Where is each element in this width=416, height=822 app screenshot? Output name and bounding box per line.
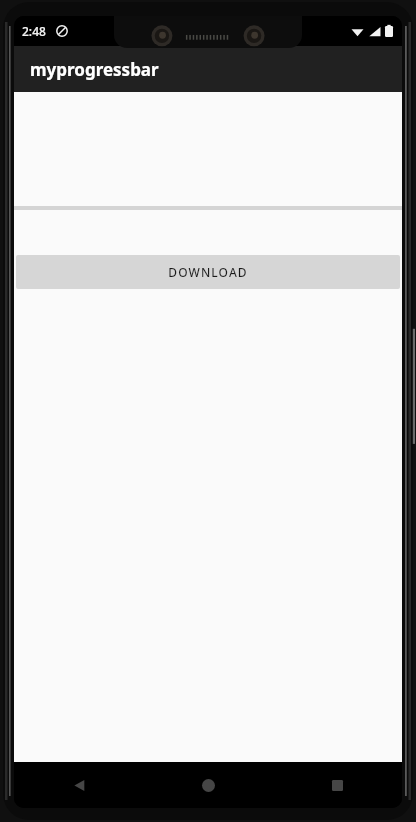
staticText: DOWNLOAD — [168, 264, 248, 280]
staticText: myprogressbar — [30, 58, 159, 81]
button[interactable]: Recent apps — [273, 762, 402, 808]
button[interactable]: DOWNLOAD — [16, 255, 400, 289]
button[interactable]: Home — [144, 762, 273, 808]
staticText: 2:48 — [22, 23, 46, 39]
button[interactable]: Back — [14, 762, 144, 808]
